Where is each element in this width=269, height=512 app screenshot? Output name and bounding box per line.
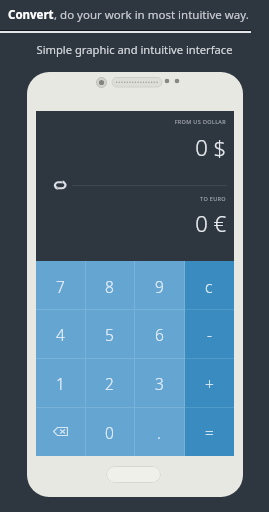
button[interactable]: 1 <box>36 358 85 407</box>
staticText: - <box>207 324 212 345</box>
staticText: 0 $ <box>36 132 226 162</box>
staticText: + <box>205 373 214 394</box>
staticText: 3 <box>155 373 164 394</box>
button[interactable]: = <box>184 407 234 456</box>
staticText: 6 <box>155 324 164 345</box>
button[interactable]: - <box>184 309 234 358</box>
button[interactable]: Swap currencies <box>54 180 68 190</box>
staticText: = <box>205 422 214 443</box>
staticText: 5 <box>105 324 114 345</box>
staticText: 8 <box>105 276 114 297</box>
staticText: 9 <box>155 276 164 297</box>
button[interactable]: 2 <box>85 358 134 407</box>
staticText: 7 <box>56 276 65 297</box>
button[interactable]: 8 <box>85 261 134 309</box>
staticText: 1 <box>56 373 65 394</box>
staticText: 0 <box>105 422 114 443</box>
button[interactable]: + <box>184 358 234 407</box>
staticText: c <box>205 276 213 297</box>
staticText: TO EURO <box>36 195 226 202</box>
staticText: 2 <box>105 373 114 394</box>
button[interactable]: 0 <box>85 407 134 456</box>
staticText: FROM US DOLLAR <box>36 118 226 125</box>
button[interactable]: 3 <box>134 358 184 407</box>
button[interactable]: 5 <box>85 309 134 358</box>
staticText: 0 € <box>36 208 226 238</box>
button[interactable]: . <box>134 407 184 456</box>
button[interactable]: Backspace <box>36 407 85 456</box>
button[interactable]: c <box>184 261 234 309</box>
staticText: 4 <box>56 324 65 345</box>
staticText: Convert <box>8 7 54 23</box>
other: Backspace <box>53 427 68 436</box>
staticText: Simple graphic and intuitive interface <box>0 42 269 57</box>
button[interactable]: 4 <box>36 309 85 358</box>
staticText: . <box>157 422 161 443</box>
button[interactable]: 6 <box>134 309 184 358</box>
button[interactable]: 9 <box>134 261 184 309</box>
staticText: , do your work in most intuitive way. <box>54 7 249 23</box>
button[interactable]: 7 <box>36 261 85 309</box>
